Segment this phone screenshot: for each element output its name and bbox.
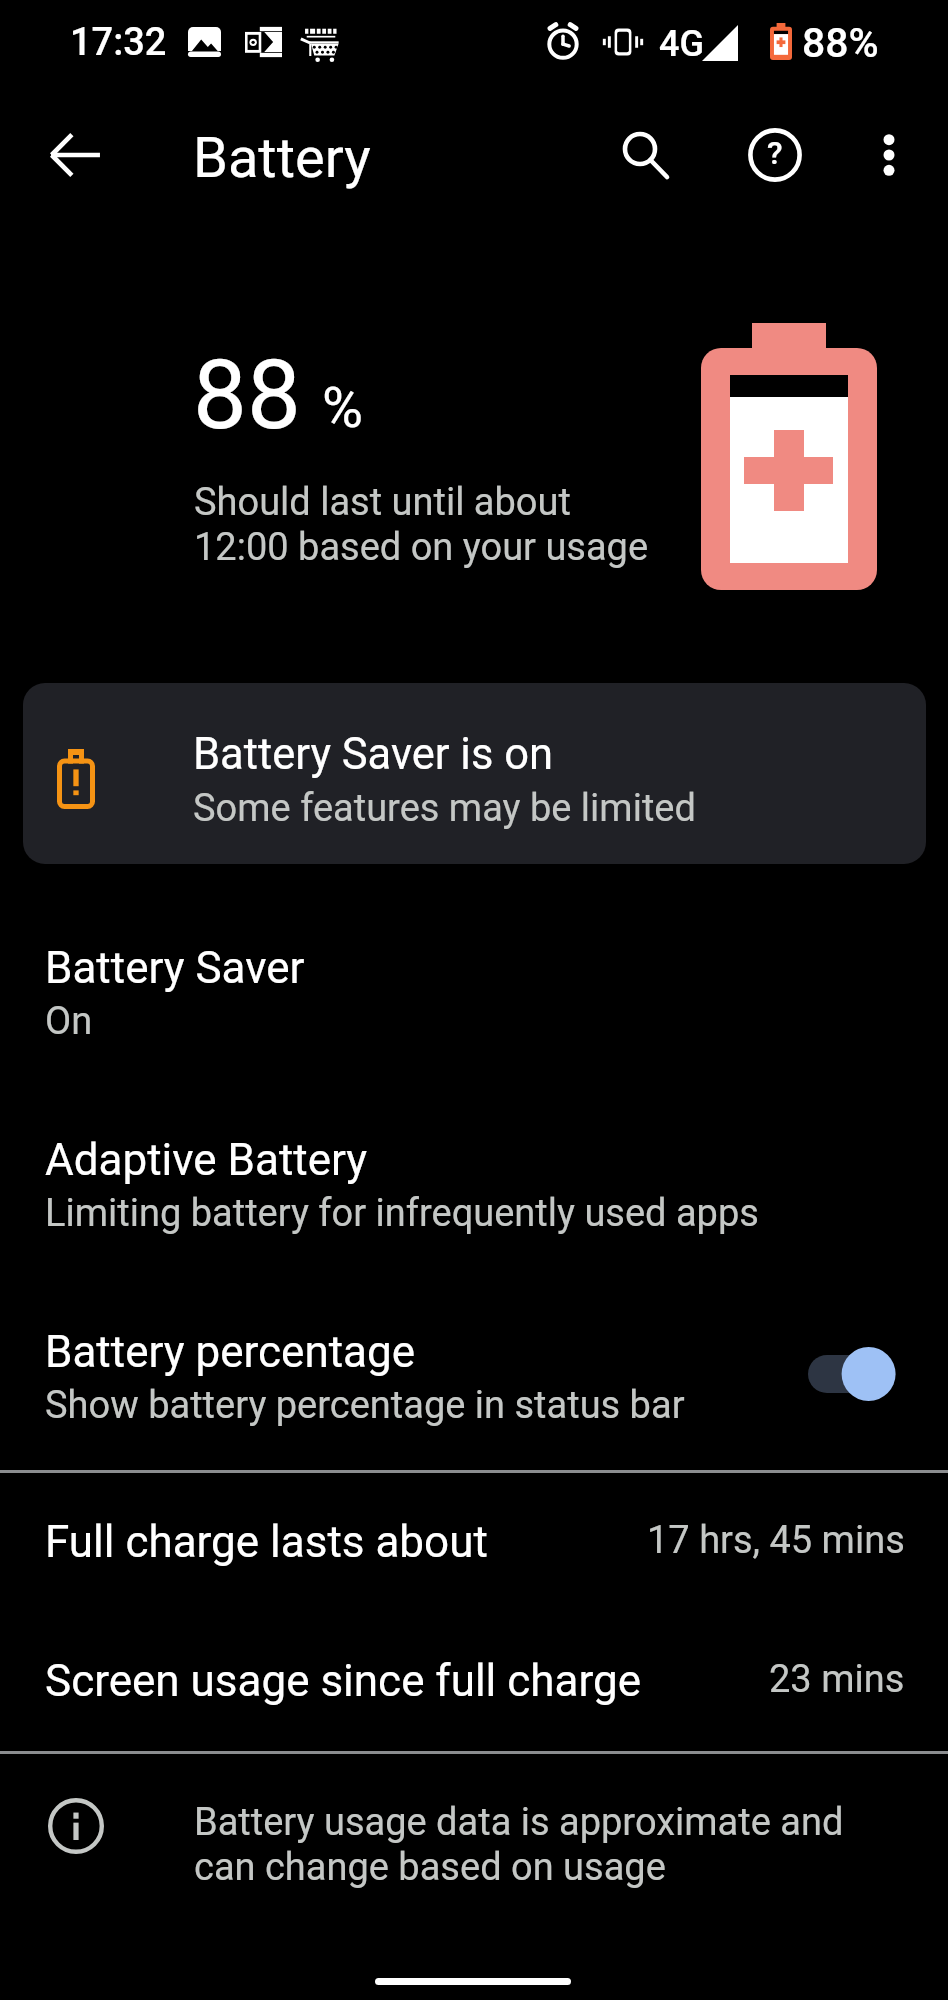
staticText: Battery Saver (45, 942, 305, 994)
button[interactable]: More options (841, 107, 937, 203)
staticText: 88% (802, 19, 879, 67)
staticText: Screen usage since full charge (45, 1655, 641, 1707)
staticText: Battery Saver is on (193, 729, 554, 780)
staticText: Show battery percentage in status bar (45, 1383, 685, 1428)
staticText: 4G (659, 23, 704, 65)
staticText: On (45, 999, 93, 1044)
button[interactable]: Full charge lasts about (0, 1516, 948, 1616)
button[interactable]: Battery percentage toggle (792, 1330, 916, 1416)
staticText: % (322, 375, 364, 441)
button[interactable]: Adaptive Battery (0, 1134, 948, 1289)
staticText: Adaptive Battery (45, 1134, 368, 1186)
button[interactable]: Battery Saver (0, 942, 948, 1097)
button[interactable]: Battery Saver is on (23, 683, 926, 864)
staticText: Limiting battery for infrequently used a… (45, 1191, 759, 1236)
button[interactable]: Back (27, 107, 123, 203)
button[interactable]: Search (597, 107, 693, 203)
button[interactable]: Help (727, 107, 823, 203)
staticText: 88 (193, 339, 301, 452)
button[interactable]: Screen usage since full charge (0, 1655, 948, 1755)
staticText: Some features may be limited (193, 786, 696, 831)
staticText: Full charge lasts about (45, 1516, 488, 1568)
button[interactable]: Battery percentage (0, 1326, 948, 1481)
staticText: ? (767, 134, 783, 172)
staticText: 17 hrs, 45 mins (647, 1518, 905, 1563)
staticText: Battery (193, 125, 371, 191)
staticText: 17:32 (70, 20, 167, 65)
staticText: Should last until about 12:00 based on y… (194, 480, 649, 570)
staticText: 23 mins (769, 1657, 905, 1702)
staticText: Battery usage data is approximate and ca… (194, 1800, 844, 1890)
staticText: Battery percentage (45, 1326, 416, 1378)
